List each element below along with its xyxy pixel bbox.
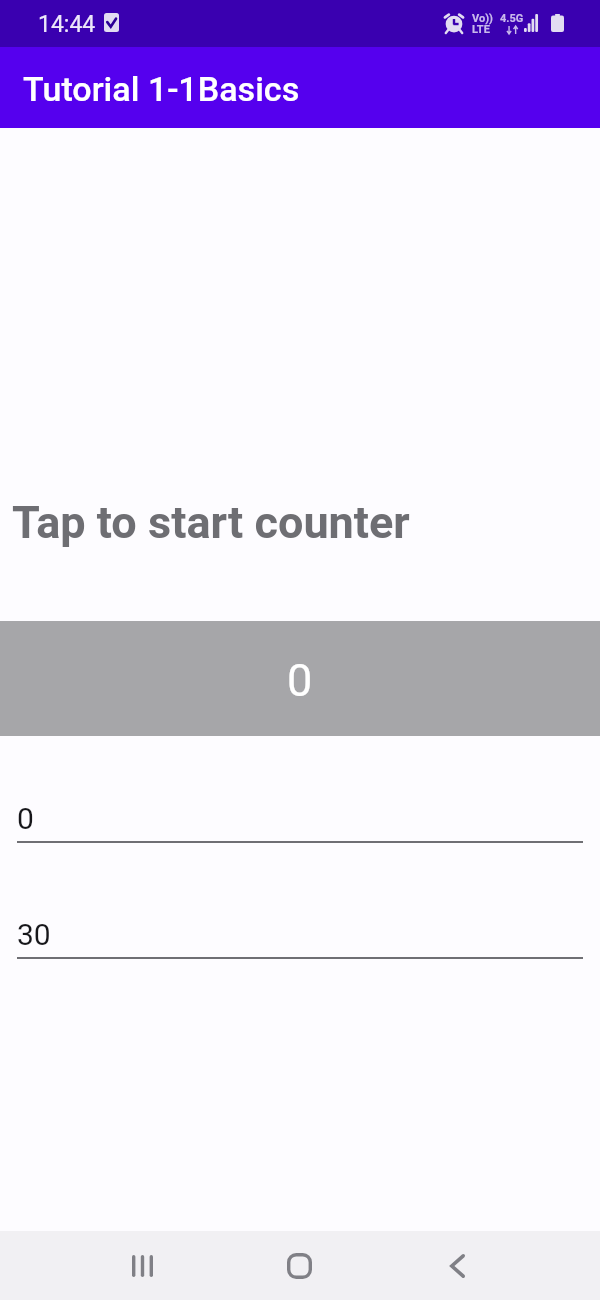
button[interactable]: Back [422, 1231, 493, 1300]
button[interactable]: Recent apps [107, 1231, 178, 1300]
staticText: 0 [287, 654, 313, 707]
button[interactable]: Home [264, 1231, 335, 1300]
staticText: Tutorial 1-1Basics [23, 69, 300, 109]
button[interactable]: 0 [17, 801, 583, 843]
button[interactable]: Tap to start counter [0, 496, 600, 549]
button[interactable]: 0 [0, 621, 600, 736]
button[interactable]: 30 [17, 917, 583, 959]
staticText: Vo)) [472, 12, 493, 25]
staticText: 30 [17, 917, 51, 952]
staticText: LTE [472, 23, 490, 36]
staticText: Tap to start counter [12, 496, 410, 549]
staticText: 4.5G [500, 12, 524, 25]
staticText: 14:44 [38, 11, 96, 38]
staticText: 0 [17, 801, 34, 836]
